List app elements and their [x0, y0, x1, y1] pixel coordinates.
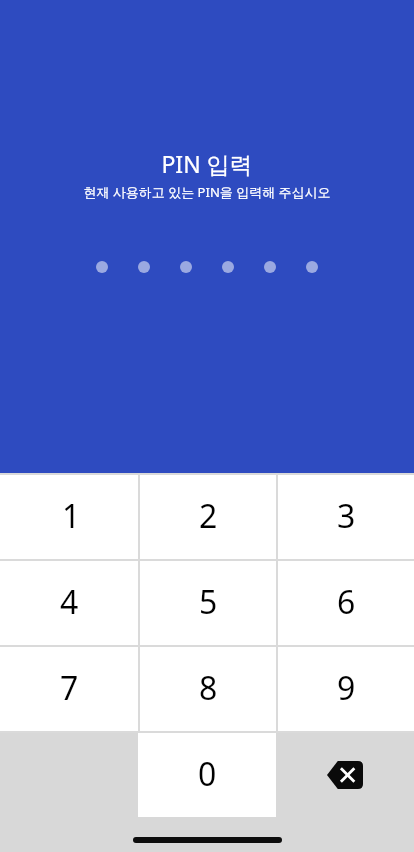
button[interactable]: 4	[0, 561, 138, 645]
button[interactable]: Backspace	[276, 733, 414, 817]
button[interactable]: 0	[138, 733, 276, 817]
staticText: PIN 입력	[161, 148, 253, 179]
button[interactable]: 9	[278, 647, 414, 731]
staticText: 2	[199, 494, 218, 538]
staticText: 0	[198, 752, 217, 796]
staticText: 현재 사용하고 있는 PIN을 입력해 주십시오	[83, 183, 331, 201]
button[interactable]: 1	[0, 475, 138, 559]
staticText: 9	[337, 666, 356, 710]
button[interactable]: 6	[278, 561, 414, 645]
button[interactable]: 5	[140, 561, 276, 645]
button[interactable]: 7	[0, 647, 138, 731]
button[interactable]: 3	[278, 475, 414, 559]
staticText: 1	[62, 494, 81, 538]
button[interactable]: 8	[140, 647, 276, 731]
staticText: 3	[337, 494, 356, 538]
staticText: 8	[199, 666, 218, 710]
button[interactable]: 2	[140, 475, 276, 559]
staticText: 4	[60, 580, 79, 624]
staticText: 7	[60, 666, 79, 710]
staticText: 5	[199, 580, 218, 624]
staticText: 6	[337, 580, 356, 624]
